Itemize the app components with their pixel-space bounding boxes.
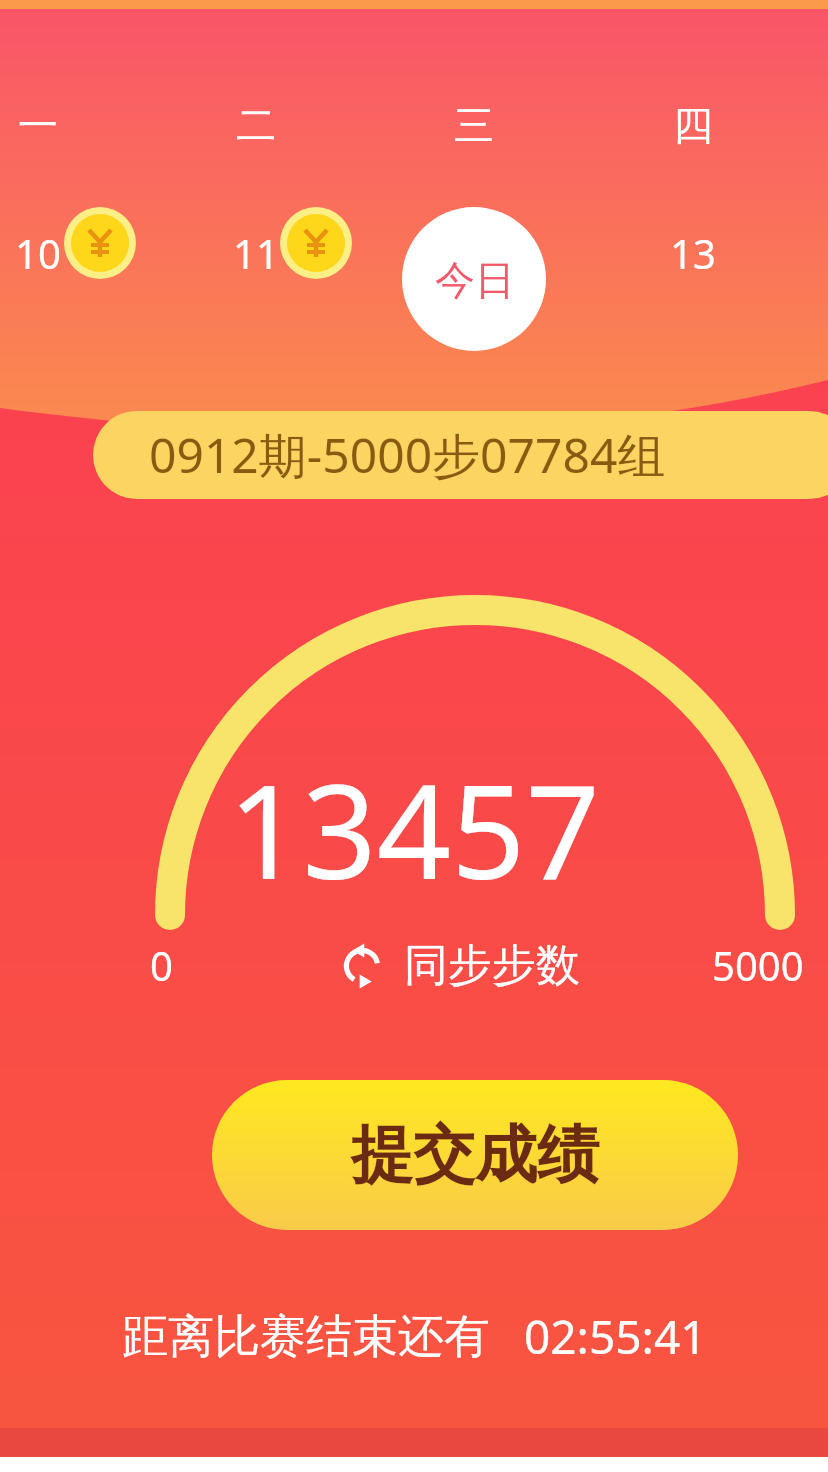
staticText: 三 bbox=[454, 100, 494, 150]
staticText: 提交成绩 bbox=[351, 1116, 599, 1194]
button[interactable]: 一 bbox=[0, 100, 98, 280]
button[interactable]: 同步步数 bbox=[336, 938, 580, 993]
staticText: 二 bbox=[236, 100, 276, 150]
button[interactable]: 今日 bbox=[402, 207, 547, 352]
staticText: 13 bbox=[670, 226, 716, 280]
staticText: 13457 bbox=[228, 740, 600, 917]
staticText: 11 bbox=[233, 226, 279, 280]
staticText: 今日 bbox=[435, 255, 515, 305]
staticText: 同步步数 bbox=[404, 938, 580, 993]
staticText: 距离比赛结束还有 bbox=[122, 1308, 490, 1366]
button[interactable]: 四 bbox=[633, 100, 753, 280]
staticText: 02:55:41 bbox=[524, 1305, 707, 1368]
staticText: 10 bbox=[15, 226, 61, 280]
button[interactable]: 提交成绩 bbox=[212, 1080, 738, 1230]
button[interactable]: 二 bbox=[196, 100, 316, 280]
staticText: 0 bbox=[150, 938, 173, 992]
other: 同步步数 bbox=[336, 940, 388, 992]
staticText: 0912期-5000步07784组 bbox=[149, 422, 666, 488]
staticText: 四 bbox=[673, 100, 713, 150]
staticText: 一 bbox=[18, 100, 58, 150]
staticText: 5000 bbox=[712, 938, 804, 992]
button[interactable]: 三 bbox=[414, 100, 534, 280]
button[interactable]: 0912期-5000步07784组 bbox=[93, 411, 828, 499]
